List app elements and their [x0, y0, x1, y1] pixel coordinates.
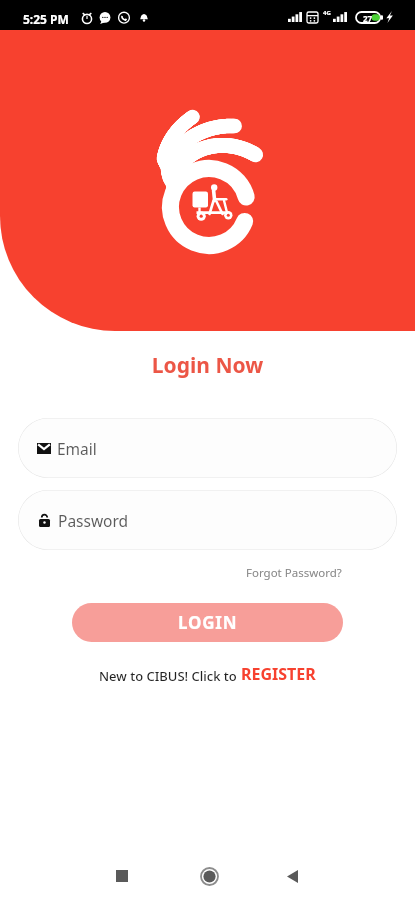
- staticText: Forgot Password?: [246, 565, 342, 581]
- staticText: 4G: [323, 9, 331, 17]
- staticText: 27: [363, 13, 373, 24]
- button[interactable]: REGISTER: [241, 663, 316, 685]
- staticText: Email: [57, 438, 97, 459]
- staticText: New to CIBUS! Click to: [99, 667, 241, 685]
- button[interactable]: Email: [18, 418, 397, 478]
- staticText: Login Now: [0, 351, 415, 380]
- button[interactable]: Forgot Password?: [244, 563, 344, 583]
- button[interactable]: Password: [18, 490, 397, 550]
- staticText: Password: [58, 510, 129, 531]
- staticText: 5:25 PM: [23, 11, 69, 27]
- button[interactable]: Back: [272, 856, 312, 896]
- button[interactable]: Recent apps: [102, 856, 142, 896]
- button[interactable]: LOGIN: [72, 603, 343, 642]
- staticText: LOGIN: [178, 611, 238, 634]
- staticText: REGISTER: [241, 663, 316, 685]
- button[interactable]: Home: [189, 856, 229, 896]
